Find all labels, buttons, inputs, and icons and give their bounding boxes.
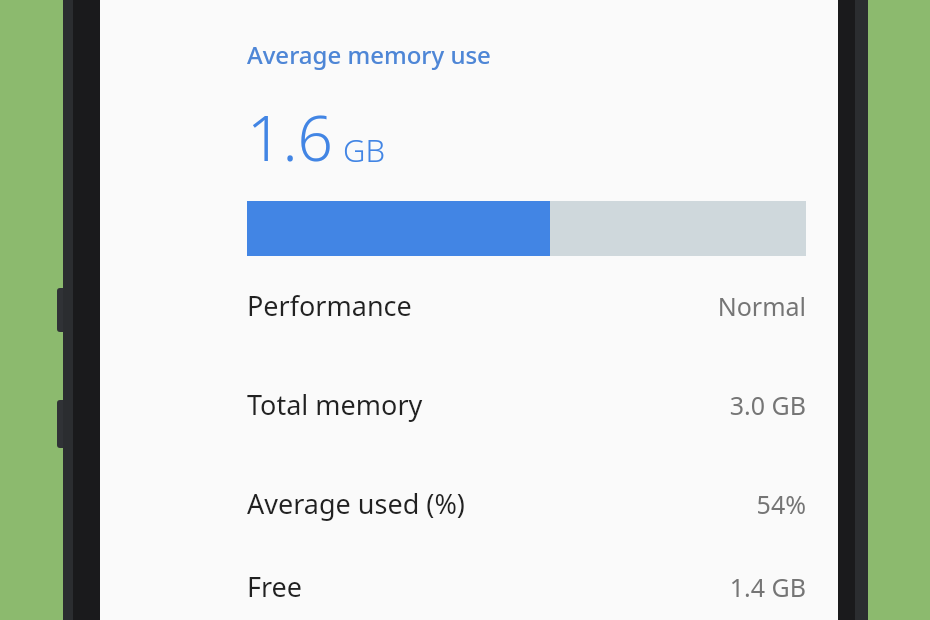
staticText: 1.4 GB [729, 570, 806, 604]
staticText: 54% [756, 487, 806, 521]
other: Volume button [57, 288, 69, 332]
button[interactable]: Average memory use [247, 38, 491, 71]
staticText: Total memory [247, 386, 423, 423]
button[interactable]: Total memory [247, 355, 806, 454]
staticText: 3.0 GB [729, 388, 806, 422]
other: Power button [57, 400, 69, 448]
staticText: Performance [247, 287, 412, 324]
staticText: 1.6 [247, 95, 333, 179]
button[interactable]: Average used (%) [247, 454, 806, 553]
button[interactable]: Memory usage 54 percent [247, 201, 806, 256]
staticText: Free [247, 568, 303, 605]
button[interactable]: Performance [247, 256, 806, 355]
staticText: Normal [717, 289, 806, 323]
button[interactable]: Free [247, 553, 806, 620]
staticText: Average used (%) [247, 485, 465, 522]
staticText: GB [343, 129, 386, 171]
